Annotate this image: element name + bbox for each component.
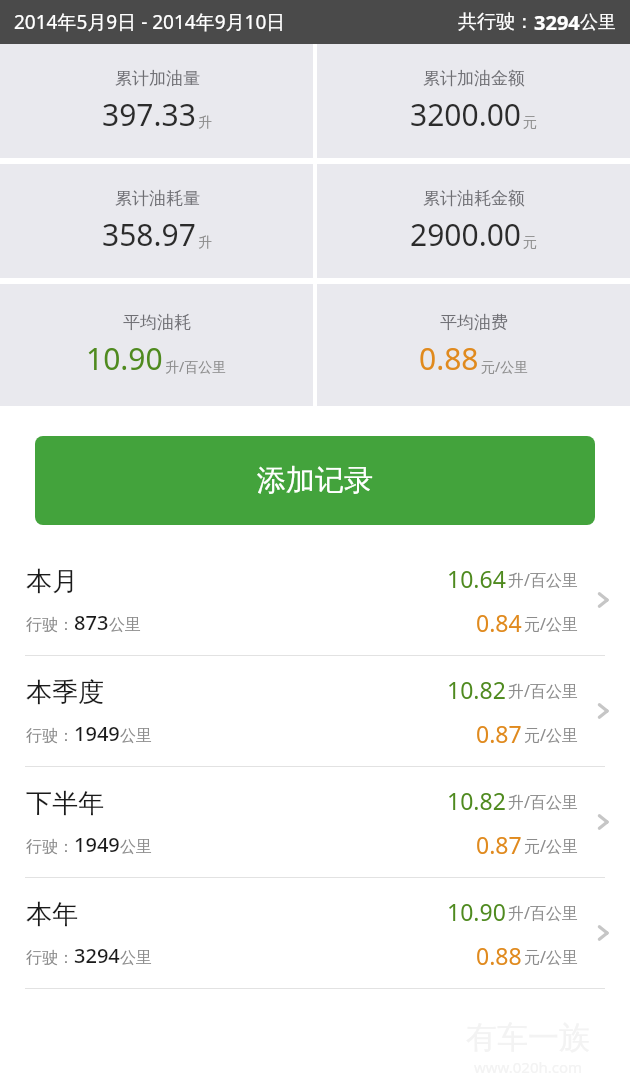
button[interactable]: 累计加油金额 [317,44,630,158]
staticText: 3294 [534,9,580,36]
staticText: 10.90 [447,896,506,927]
staticText: 397.33 [102,94,196,135]
staticText: 0.88 [476,940,522,971]
staticText: 升 [198,234,212,252]
other: View details for 本月 [590,587,616,613]
staticText: 行驶： [26,726,74,746]
staticText: 有车一族 [466,1018,590,1057]
staticText: 10.90 [86,338,163,379]
staticText: 元/公里 [524,613,578,635]
staticText: 累计加油金额 [423,68,525,89]
staticText: 本月 [26,565,78,598]
staticText: 元/公里 [524,835,578,857]
staticText: 升 [198,114,212,132]
staticText: 元 [523,114,537,132]
staticText: 公里 [580,11,616,34]
staticText: 下半年 [26,787,104,820]
staticText: 元 [523,234,537,252]
staticText: 升/百公里 [508,791,578,813]
staticText: 升/百公里 [165,357,227,376]
button[interactable]: 累计油耗金额 [317,164,630,278]
staticText: 0.87 [476,829,522,860]
staticText: 873 [74,609,109,636]
button[interactable]: 本年 [0,878,630,988]
staticText: 累计加油量 [115,68,200,89]
staticText: 行驶： [26,615,74,635]
staticText: 元/公里 [524,946,578,968]
staticText: 1949 [74,831,120,858]
staticText: 公里 [120,837,152,857]
staticText: 升/百公里 [508,680,578,702]
staticText: 公里 [120,948,152,968]
staticText: 公里 [109,615,141,635]
staticText: 升/百公里 [508,902,578,924]
button[interactable]: 平均油耗 [0,284,313,406]
staticText: 1949 [74,720,120,747]
other: View details for 本年 [590,920,616,946]
staticText: 元/公里 [481,357,529,376]
staticText: 10.82 [447,785,506,816]
staticText: 平均油耗 [123,312,191,333]
staticText: 本年 [26,898,78,931]
staticText: 本季度 [26,676,104,709]
staticText: 行驶： [26,837,74,857]
other: View details for 下半年 [590,809,616,835]
button[interactable]: 添加记录 [35,436,595,525]
staticText: 3200.00 [410,94,521,135]
staticText: 元/公里 [524,724,578,746]
staticText: 2900.00 [410,214,521,255]
staticText: 添加记录 [257,462,373,499]
staticText: 0.84 [476,607,522,638]
button[interactable]: 本月 [0,545,630,655]
staticText: 共行驶： [458,10,534,34]
staticText: 累计油耗量 [115,188,200,209]
staticText: 行驶： [26,948,74,968]
staticText: 10.64 [447,563,506,594]
button[interactable]: 平均油费 [317,284,630,406]
staticText: 3294 [74,942,120,969]
button[interactable]: 累计加油量 [0,44,313,158]
staticText: 2014年5月9日 - 2014年9月10日 [14,9,286,35]
staticText: 公里 [120,726,152,746]
staticText: 10.82 [447,674,506,705]
staticText: 358.97 [102,214,196,255]
staticText: 平均油费 [440,312,508,333]
other: View details for 本季度 [590,698,616,724]
staticText: 升/百公里 [508,569,578,591]
button[interactable]: 累计油耗量 [0,164,313,278]
button[interactable]: 下半年 [0,767,630,877]
staticText: 累计油耗金额 [423,188,525,209]
staticText: 0.87 [476,718,522,749]
staticText: www.020h.com [474,1057,583,1077]
staticText: 0.88 [419,338,479,379]
button[interactable]: 本季度 [0,656,630,766]
